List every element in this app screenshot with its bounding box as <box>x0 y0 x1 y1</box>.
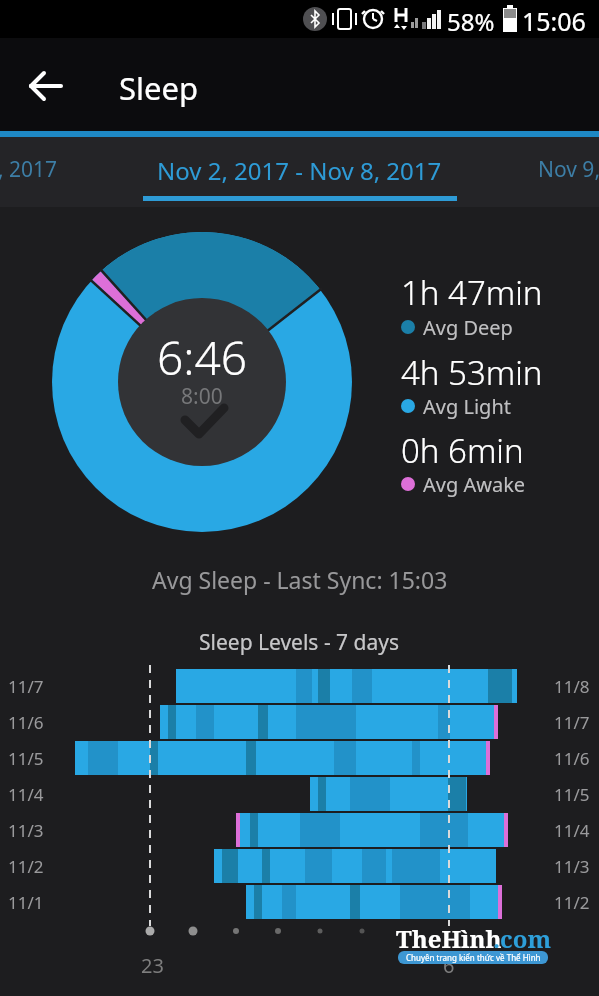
staticText: Avg Awake <box>423 471 526 497</box>
staticText: Sleep <box>119 67 199 109</box>
staticText: 11/5 <box>8 747 44 770</box>
button[interactable]: Nov 9, <box>538 155 599 184</box>
staticText: 11/7 <box>8 675 44 698</box>
staticText: 58% <box>447 5 495 38</box>
staticText: 23 <box>141 952 164 979</box>
staticText: Avg Deep <box>423 314 513 340</box>
button[interactable]: Avg Light <box>401 393 571 419</box>
staticText: 0h 6min <box>401 428 524 473</box>
staticText: Chuyên trang kiến thức về Thể Hình <box>406 952 541 963</box>
button[interactable]: TheHình <box>394 918 554 968</box>
staticText: 11/2 <box>8 855 44 878</box>
staticText: 11/4 <box>554 819 590 842</box>
staticText: TheHình <box>396 922 502 955</box>
staticText: 11/4 <box>8 783 44 806</box>
staticText: 11/6 <box>8 711 44 734</box>
button[interactable]: Avg Deep <box>401 314 571 340</box>
staticText: 6:46 <box>157 326 248 389</box>
staticText: 11/6 <box>554 747 590 770</box>
button[interactable]: Avg Awake <box>401 471 571 497</box>
staticText: 11/5 <box>554 783 590 806</box>
staticText: 11/2 <box>554 891 590 914</box>
staticText: Avg Sleep - Last Sync: 15:03 <box>152 564 448 595</box>
staticText: 11/3 <box>554 855 590 878</box>
staticText: 15:06 <box>522 4 586 38</box>
staticText: , 2017 <box>0 155 58 184</box>
button[interactable]: , 2017 <box>0 155 88 184</box>
staticText: Nov 9, <box>538 155 599 184</box>
staticText: Nov 2, 2017 - Nov 8, 2017 <box>157 154 442 187</box>
staticText: Avg Light <box>423 393 511 419</box>
staticText: 6 <box>443 952 455 979</box>
staticText: 11/1 <box>8 891 44 914</box>
staticText: 11/3 <box>8 819 44 842</box>
button[interactable]: Nov 2, 2017 - Nov 8, 2017 <box>0 137 599 207</box>
staticText: 1h 47min <box>401 270 543 315</box>
staticText: 11/7 <box>554 711 590 734</box>
staticText: .com <box>493 922 552 955</box>
staticText: 4h 53min <box>401 350 543 395</box>
staticText: 11/8 <box>554 675 590 698</box>
staticText: Sleep Levels - 7 days <box>199 628 400 657</box>
staticText: 8:00 <box>181 382 223 411</box>
button[interactable] <box>18 58 74 114</box>
